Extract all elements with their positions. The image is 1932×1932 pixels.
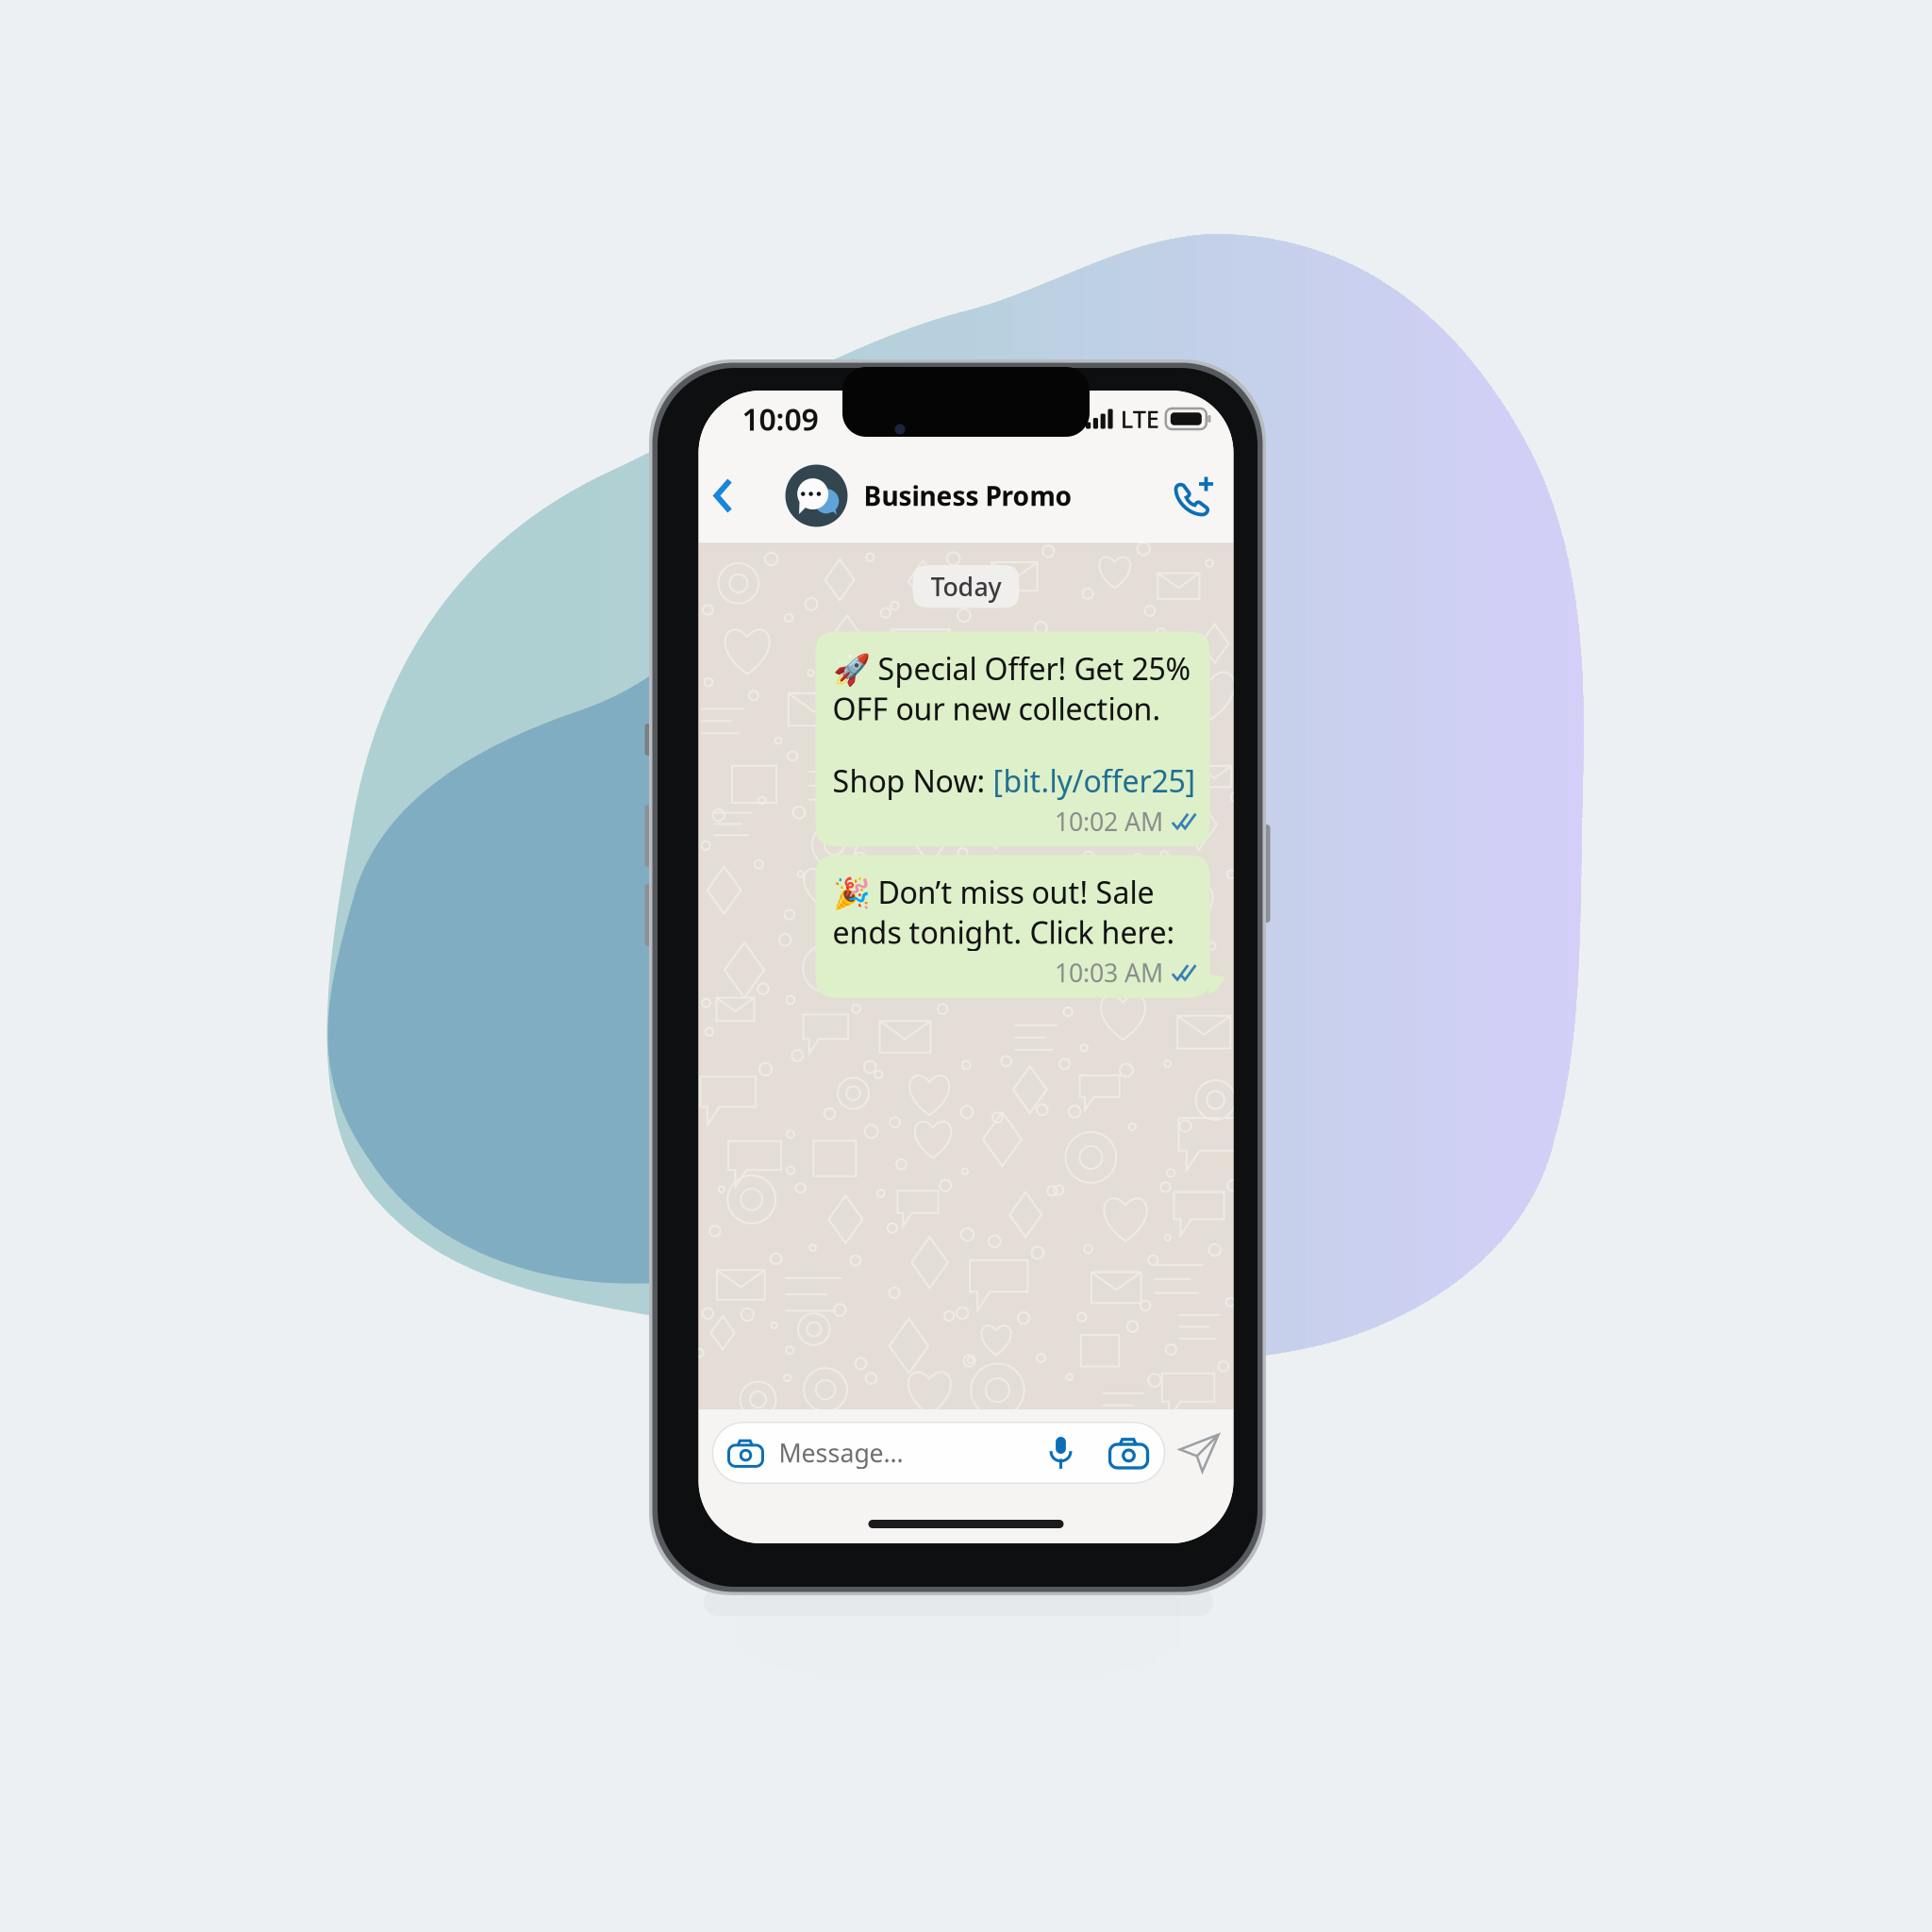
- staticText: 🎉 Don’t miss out! Sale ends tonight. Cli…: [833, 872, 1175, 952]
- button[interactable]: Attach photo: [1093, 1423, 1165, 1483]
- button[interactable]: Record voice message: [1029, 1423, 1093, 1483]
- button[interactable]: Send: [1165, 1423, 1233, 1483]
- staticText: Message...: [779, 1436, 903, 1469]
- staticText: 🚀 Special Offer! Get 25% OFF our new col…: [833, 648, 1191, 729]
- button[interactable]: Add to call: [1150, 447, 1233, 544]
- staticText: 10:03 AM: [1055, 956, 1163, 989]
- staticText: 10:09: [742, 399, 818, 439]
- button[interactable]: Business Promo contact info: [785, 447, 1072, 544]
- staticText: Shop Now:: [833, 761, 993, 801]
- button[interactable]: Open camera: [713, 1423, 779, 1483]
- staticText: [bit.ly/offer25]: [993, 761, 1196, 801]
- button[interactable]: Back: [699, 447, 785, 544]
- staticText: Business Promo: [864, 478, 1072, 513]
- staticText: 10:02 AM: [1055, 805, 1163, 838]
- staticText: Today: [931, 570, 1001, 603]
- staticText: LTE: [1121, 403, 1159, 435]
